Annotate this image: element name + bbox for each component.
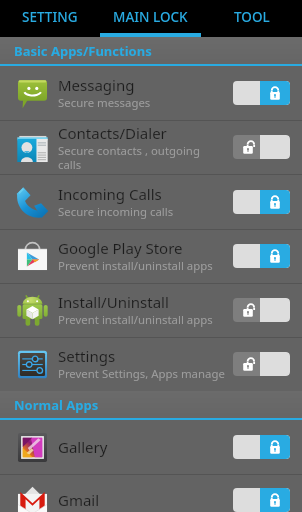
button[interactable]: Unlocked: [233, 135, 290, 159]
button[interactable]: Locked: [233, 488, 290, 512]
button[interactable]: SETTING: [0, 0, 100, 37]
staticText: Gmail: [58, 490, 100, 510]
staticText: Normal Apps: [14, 396, 99, 414]
button[interactable]: Settings: [0, 337, 302, 392]
button[interactable]: Contacts/Dialer: [0, 120, 302, 175]
staticText: Google Play Store: [58, 238, 183, 258]
button[interactable]: Unlocked: [233, 298, 290, 322]
button[interactable]: MAIN LOCK: [100, 0, 201, 37]
staticText: Settings: [58, 346, 116, 366]
button[interactable]: Locked: [233, 435, 290, 459]
button[interactable]: Gmail: [0, 473, 302, 512]
staticText: Prevent Settings, Apps manage: [58, 366, 225, 382]
button[interactable]: Locked: [233, 244, 290, 268]
button[interactable]: Gallery: [0, 420, 302, 475]
button[interactable]: Incoming Calls: [0, 175, 302, 230]
button[interactable]: Locked: [233, 81, 290, 105]
staticText: Secure incoming calls: [58, 204, 174, 220]
staticText: Secure contacts , outgoing calls: [58, 143, 226, 172]
staticText: Contacts/Dialer: [58, 123, 167, 143]
staticText: Secure messages: [58, 95, 151, 111]
button[interactable]: Install/Uninstall: [0, 283, 302, 338]
button[interactable]: Google Play Store: [0, 229, 302, 284]
staticText: Prevent install/uninstall apps: [58, 258, 213, 274]
staticText: Basic Apps/Functions: [14, 42, 152, 60]
button[interactable]: Locked: [233, 190, 290, 214]
staticText: Messaging: [58, 75, 135, 95]
button[interactable]: Unlocked: [233, 352, 290, 376]
staticText: MAIN LOCK: [113, 8, 188, 26]
staticText: Gallery: [58, 437, 108, 457]
button[interactable]: Messaging: [0, 66, 302, 121]
staticText: TOOL: [234, 8, 270, 26]
button[interactable]: TOOL: [201, 0, 302, 37]
staticText: Prevent install/uninstall apps: [58, 312, 213, 328]
staticText: SETTING: [22, 8, 78, 26]
staticText: Install/Uninstall: [58, 292, 169, 312]
staticText: Incoming Calls: [58, 184, 162, 204]
